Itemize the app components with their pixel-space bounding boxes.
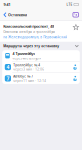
button[interactable]: 4 Троллейбус <box>2 50 80 61</box>
button[interactable]: 7 <box>2 73 80 84</box>
staticText: Комсомольский проспект, 48 <box>3 24 54 29</box>
staticText: через «Металлург» <box>12 57 40 60</box>
staticText: Остановка автобуса и троллейбуса <box>3 30 55 34</box>
button[interactable]: на Железнодорожную, в Первомайский <box>3 35 67 39</box>
staticText: 4 <box>6 64 9 71</box>
staticText: на Железнодорожную, в Первомайский <box>3 35 67 39</box>
button[interactable]: Остановка <box>0 9 29 20</box>
button[interactable]: 4 <box>2 62 80 73</box>
staticText: LTE <box>66 2 72 7</box>
button[interactable]: Add to favourites <box>73 24 79 30</box>
staticText: 4 Троллейбус <box>12 51 35 56</box>
button[interactable]: Show on map <box>69 9 82 20</box>
staticText: Троллейбус № 4 <box>13 63 40 67</box>
staticText: Автобус № 7 <box>13 74 33 78</box>
staticText: Маршруты через эту остановку <box>3 44 59 48</box>
staticText: Остановка <box>8 12 27 17</box>
button[interactable]: Маршруты через эту остановку <box>0 42 82 50</box>
staticText: 7 <box>6 75 9 82</box>
staticText: 9:41 <box>3 2 10 7</box>
staticText: через 3 мин · 12:06 <box>13 68 44 71</box>
staticText: через 11 мин · 12:14 <box>13 79 46 83</box>
